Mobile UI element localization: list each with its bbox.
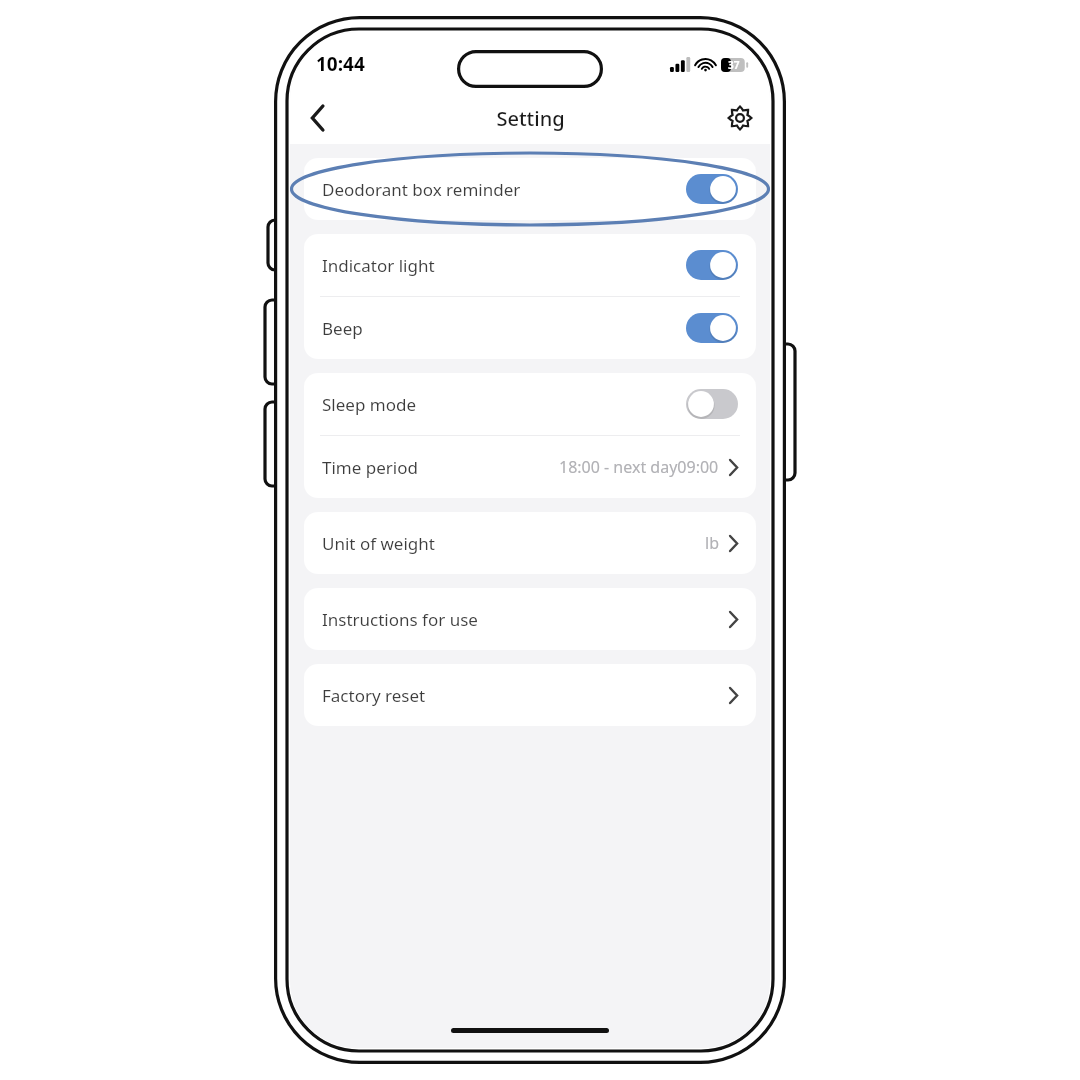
button[interactable]: Factory reset xyxy=(304,664,756,726)
button[interactable]: Toggle on xyxy=(686,174,738,204)
staticText: Sleep mode xyxy=(322,393,416,416)
staticText: Beep xyxy=(322,317,363,340)
button[interactable]: Beep xyxy=(304,297,756,359)
staticText: Time period xyxy=(322,456,418,479)
button[interactable]: Deodorant box reminder xyxy=(304,158,756,220)
staticText: Setting xyxy=(496,105,565,132)
staticText: 37 xyxy=(728,58,740,72)
staticText: Indicator light xyxy=(322,254,435,277)
staticText: lb xyxy=(705,532,719,554)
button[interactable]: Toggle on xyxy=(686,250,738,280)
button[interactable]: Back xyxy=(296,96,340,140)
staticText: Factory reset xyxy=(322,684,426,707)
staticText: Unit of weight xyxy=(322,532,435,555)
button[interactable]: Sleep mode xyxy=(304,373,756,435)
staticText: Deodorant box reminder xyxy=(322,178,521,201)
button[interactable]: Indicator light xyxy=(304,234,756,296)
staticText: 18:00 - next day09:00 xyxy=(559,456,719,478)
button[interactable]: Toggle off xyxy=(686,389,738,419)
button[interactable]: Unit of weight xyxy=(304,512,756,574)
button[interactable]: Settings xyxy=(718,96,762,140)
button[interactable]: Instructions for use xyxy=(304,588,756,650)
staticText: Instructions for use xyxy=(322,608,478,631)
button[interactable]: Toggle on xyxy=(686,313,738,343)
button[interactable]: Time period xyxy=(304,436,756,498)
staticText: 10:44 xyxy=(316,51,365,77)
